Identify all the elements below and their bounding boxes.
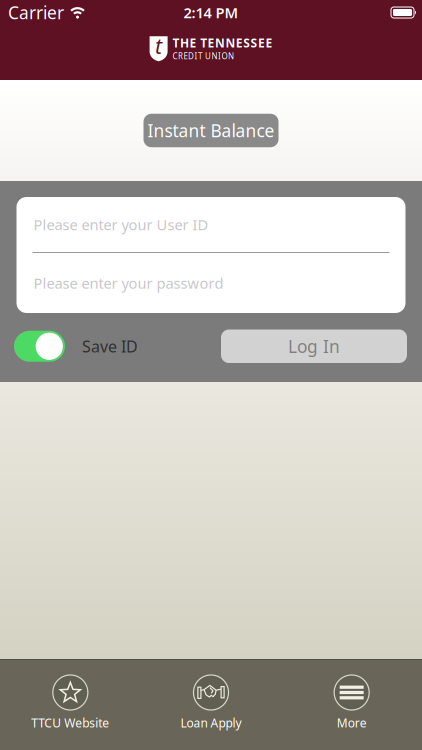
staticText: Save ID bbox=[82, 336, 138, 357]
staticText: Loan Apply bbox=[180, 715, 241, 731]
staticText: More bbox=[337, 715, 367, 731]
staticText: THE TENNESSEE bbox=[173, 35, 272, 51]
staticText: Carrier bbox=[8, 1, 64, 24]
staticText: Please enter your User ID bbox=[33, 215, 208, 234]
button[interactable]: Please enter your password bbox=[16, 253, 405, 313]
button[interactable]: Please enter your User ID bbox=[16, 197, 405, 252]
staticText: Please enter your password bbox=[33, 273, 223, 293]
button[interactable]: Log In bbox=[221, 329, 407, 363]
button[interactable]: More bbox=[281, 675, 422, 731]
staticText: 2:14 PM bbox=[183, 3, 238, 22]
button[interactable]: Loan Apply bbox=[141, 675, 281, 731]
staticText: t bbox=[155, 32, 162, 60]
button[interactable]: Instant Balance bbox=[143, 114, 278, 147]
staticText: Instant Balance bbox=[147, 119, 274, 142]
button[interactable]: TTCU Website bbox=[0, 675, 141, 731]
staticText: CREDIT UNION bbox=[173, 51, 234, 61]
staticText: Log In bbox=[288, 335, 340, 358]
button[interactable]: Save ID bbox=[14, 331, 65, 362]
staticText: TTCU Website bbox=[31, 715, 109, 731]
